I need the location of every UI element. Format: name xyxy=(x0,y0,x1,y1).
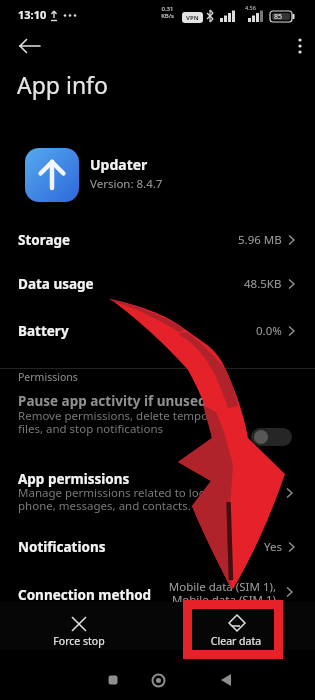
staticText: 4.56 xyxy=(245,4,256,11)
staticText: Mobile data (SIM 1), Mobile data (SIM 1) xyxy=(156,579,276,608)
button[interactable] xyxy=(251,428,292,446)
button[interactable]: Clear data xyxy=(185,604,287,648)
button[interactable] xyxy=(10,34,50,58)
staticText: Permissions xyxy=(18,370,78,384)
button[interactable]: Notifications xyxy=(0,525,315,569)
staticText: Notifications xyxy=(18,538,106,556)
staticText: Clear data xyxy=(185,634,287,648)
staticText: 0.0% xyxy=(256,323,282,339)
button[interactable]: Pause app activity if unused xyxy=(0,390,315,446)
staticText: Connection method xyxy=(18,586,152,604)
staticText: Battery xyxy=(18,322,69,340)
staticText: 5.96 MB xyxy=(238,232,282,248)
button[interactable] xyxy=(98,665,128,695)
button[interactable]: Force stop xyxy=(28,604,130,648)
button[interactable] xyxy=(143,665,173,695)
staticText: Remove permissions, delete temporary fil… xyxy=(18,408,230,437)
staticText: App info xyxy=(17,69,108,100)
staticText: 85 xyxy=(274,12,283,22)
staticText: 0.31 KB/s xyxy=(161,5,174,20)
staticText: Version: 8.4.7 xyxy=(90,176,163,192)
staticText: Data usage xyxy=(18,275,94,293)
button[interactable] xyxy=(211,665,241,695)
button[interactable] xyxy=(288,34,312,58)
staticText: Updater xyxy=(90,155,148,174)
staticText: 13:10 xyxy=(18,7,47,22)
button[interactable]: Data usage xyxy=(0,262,315,306)
staticText: 48.5KB xyxy=(244,276,282,292)
button[interactable]: Battery xyxy=(0,309,315,353)
staticText: Storage xyxy=(18,231,71,249)
staticText: Force stop xyxy=(28,634,130,648)
staticText: VPN xyxy=(186,14,199,22)
button[interactable]: App permissions xyxy=(0,468,315,518)
staticText: Pause app activity if unused xyxy=(18,392,207,410)
staticText: App permissions xyxy=(18,470,130,488)
staticText: Manage permissions related to location, … xyxy=(18,485,235,514)
staticText: Yes xyxy=(264,539,282,555)
button[interactable]: Connection method xyxy=(0,570,315,614)
button[interactable]: Storage xyxy=(0,218,315,262)
